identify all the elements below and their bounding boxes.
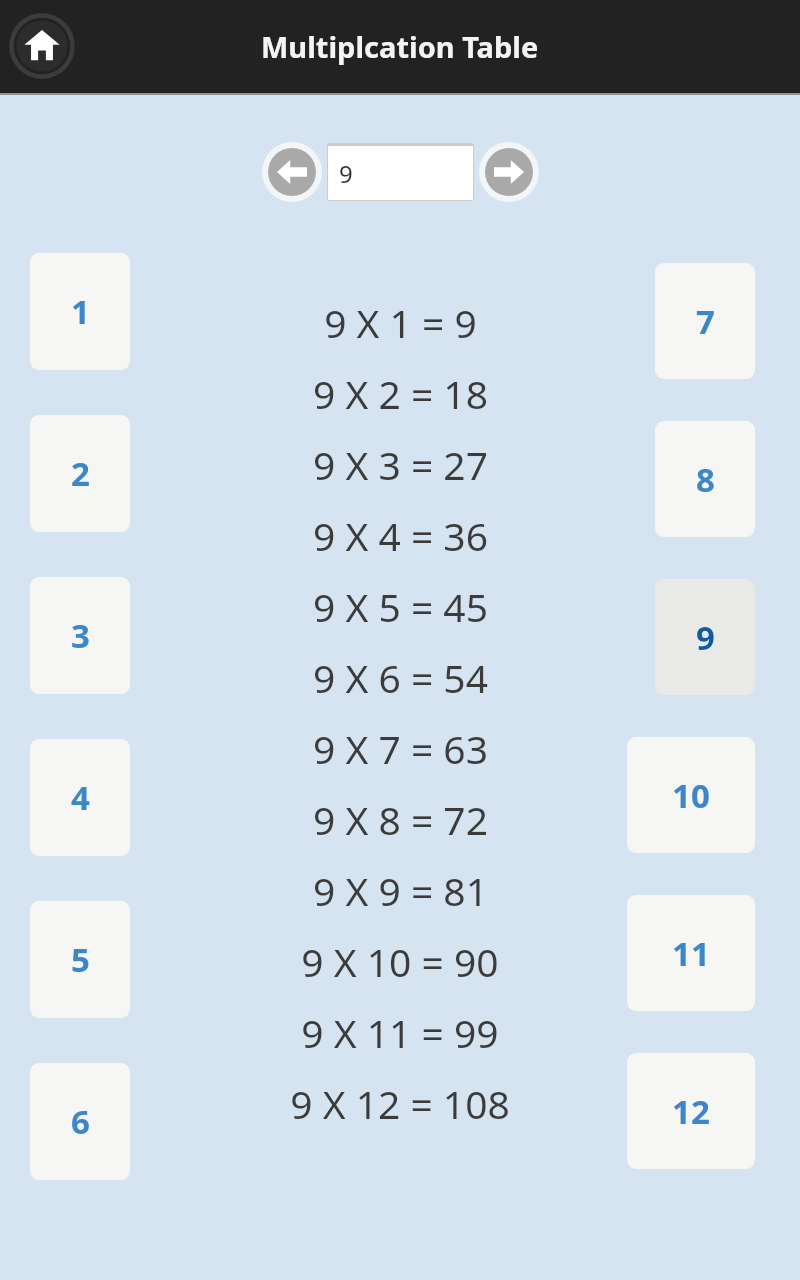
staticText: 9 X 1 = 9 xyxy=(324,296,477,349)
staticText: 6 xyxy=(71,1099,90,1144)
button[interactable]: 1 xyxy=(30,253,130,370)
staticText: 9 X 12 = 108 xyxy=(290,1077,510,1130)
staticText: Multiplcation Table xyxy=(261,27,539,66)
button[interactable]: 9 xyxy=(655,579,755,695)
button[interactable]: 8 xyxy=(655,421,755,537)
staticText: 9 X 6 = 54 xyxy=(313,651,488,704)
staticText: 3 xyxy=(71,613,90,658)
staticText: 9 xyxy=(339,157,353,190)
staticText: 10 xyxy=(672,773,710,818)
staticText: 11 xyxy=(672,931,710,976)
staticText: 7 xyxy=(696,299,715,344)
staticText: 9 xyxy=(696,615,715,660)
button[interactable]: 3 xyxy=(30,577,130,694)
button[interactable]: 6 xyxy=(30,1063,130,1180)
button[interactable]: 10 xyxy=(627,737,755,853)
button[interactable]: Previous number xyxy=(261,141,323,203)
staticText: 5 xyxy=(71,937,90,982)
button[interactable]: 12 xyxy=(627,1053,755,1169)
staticText: 9 X 2 = 18 xyxy=(313,367,488,420)
staticText: 4 xyxy=(71,775,90,820)
button[interactable]: 2 xyxy=(30,415,130,532)
button[interactable]: 9 xyxy=(328,146,473,200)
staticText: 9 X 3 = 27 xyxy=(313,438,488,491)
staticText: 12 xyxy=(672,1089,710,1134)
staticText: 9 X 9 = 81 xyxy=(313,864,488,917)
staticText: 9 X 5 = 45 xyxy=(313,580,488,633)
staticText: 1 xyxy=(71,289,90,334)
button[interactable]: 5 xyxy=(30,901,130,1018)
staticText: 2 xyxy=(71,451,90,496)
staticText: 9 X 7 = 63 xyxy=(313,722,488,775)
button[interactable]: Home xyxy=(8,12,76,80)
staticText: 9 X 11 = 99 xyxy=(301,1006,499,1059)
staticText: 9 X 8 = 72 xyxy=(313,793,488,846)
staticText: 8 xyxy=(696,457,715,502)
button[interactable]: 7 xyxy=(655,263,755,379)
button[interactable]: 4 xyxy=(30,739,130,856)
button[interactable]: 11 xyxy=(627,895,755,1011)
button[interactable]: Next number xyxy=(478,141,540,203)
staticText: 9 X 4 = 36 xyxy=(313,509,488,562)
staticText: 9 X 10 = 90 xyxy=(301,935,499,988)
